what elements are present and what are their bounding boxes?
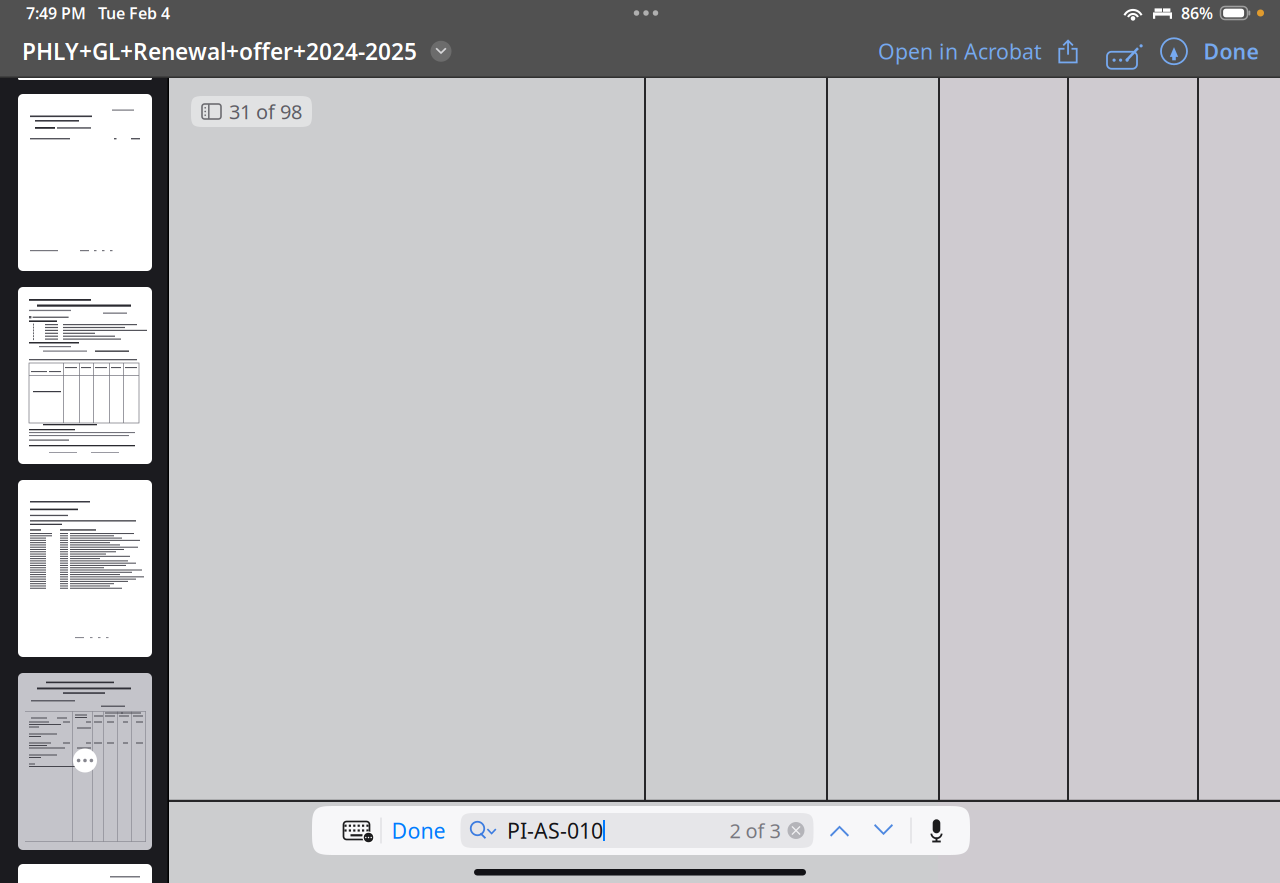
- button[interactable]: Hide keyboard: [339, 806, 373, 854]
- button[interactable]: Document options: [428, 36, 454, 66]
- staticText: Done: [1203, 37, 1258, 65]
- button[interactable]: Dictate: [921, 806, 951, 854]
- staticText: PHLY+GL+Renewal+offer+2024-2025: [22, 36, 417, 66]
- staticText: Done: [391, 816, 445, 845]
- staticText: 7:49 PM: [26, 2, 86, 24]
- button[interactable]: 31 of 98: [191, 96, 312, 127]
- button[interactable]: Previous result: [820, 806, 858, 854]
- button[interactable]: Done: [1198, 31, 1264, 71]
- staticText: PI-AS-010: [507, 816, 603, 845]
- button[interactable]: Markup: [1094, 29, 1150, 73]
- staticText: Tue Feb 4: [98, 2, 170, 24]
- button[interactable]: Done: [381, 806, 455, 854]
- button[interactable]: Share: [1042, 29, 1094, 73]
- button[interactable]: Annotate: [1150, 29, 1198, 73]
- staticText: Open in Acrobat: [878, 37, 1042, 65]
- staticText: 2 of 3: [729, 817, 780, 844]
- button[interactable]: Open in Acrobat: [878, 31, 1042, 71]
- staticText: 86%: [1181, 2, 1213, 24]
- button[interactable]: Next result: [864, 806, 902, 854]
- staticText: 31 of 98: [229, 98, 302, 125]
